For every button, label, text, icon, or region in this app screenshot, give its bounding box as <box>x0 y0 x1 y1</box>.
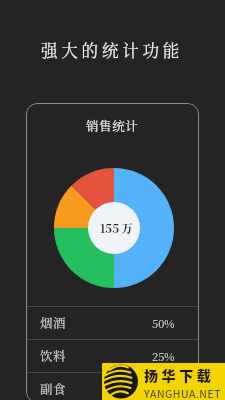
staticText: 烟酒 <box>40 314 67 332</box>
staticText: 50% <box>152 315 175 331</box>
button[interactable]: 烟酒 <box>26 307 199 339</box>
staticText: 副食 <box>40 380 67 398</box>
other: Download site watermark <box>102 363 225 400</box>
staticText: 15% <box>153 381 175 397</box>
staticText: 销售统计 <box>86 117 139 135</box>
staticText: YANGHUA.NET <box>144 386 222 400</box>
staticText: 强大的统计功能 <box>41 38 184 62</box>
staticText: 扬华下载 <box>144 365 215 385</box>
staticText: 155 万 <box>100 220 133 237</box>
button[interactable]: 饮料 <box>26 340 199 372</box>
staticText: 25% <box>152 348 175 364</box>
button[interactable]: 副食 <box>26 373 199 400</box>
staticText: 饮料 <box>40 347 67 365</box>
